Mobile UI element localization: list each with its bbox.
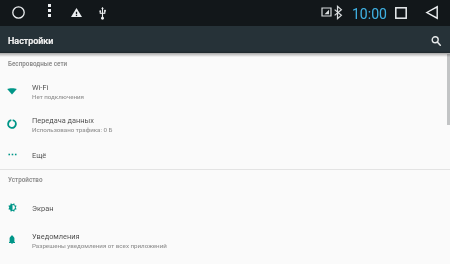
staticText: Нет подключения: [32, 93, 84, 100]
staticText: Экран: [32, 204, 54, 213]
staticText: Уведомления: [32, 232, 80, 241]
staticText: Устройство: [8, 176, 43, 183]
staticText: Разрешены уведомления от всех приложений: [32, 242, 167, 249]
button[interactable]: Menu: [43, 4, 56, 17]
button[interactable]: Search: [425, 27, 447, 54]
button[interactable]: Home: [10, 4, 27, 21]
staticText: Ещё: [32, 151, 47, 160]
button[interactable]: Wi-Fi: [0, 75, 450, 106]
button[interactable]: Экран: [0, 192, 450, 223]
button[interactable]: Back: [423, 4, 440, 21]
staticText: 10:00: [352, 6, 387, 22]
staticText: Беспроводные сети: [8, 60, 68, 67]
staticText: Передача данных: [32, 116, 95, 125]
button[interactable]: Ещё: [0, 139, 450, 170]
button[interactable]: Уведомления: [0, 224, 450, 255]
staticText: Настройки: [8, 36, 54, 46]
staticText: Использовано трафика: 0 Б: [32, 126, 113, 133]
button[interactable]: Передача данных: [0, 108, 450, 139]
staticText: Wi-Fi: [32, 83, 49, 92]
button[interactable]: Recent apps: [392, 4, 409, 21]
